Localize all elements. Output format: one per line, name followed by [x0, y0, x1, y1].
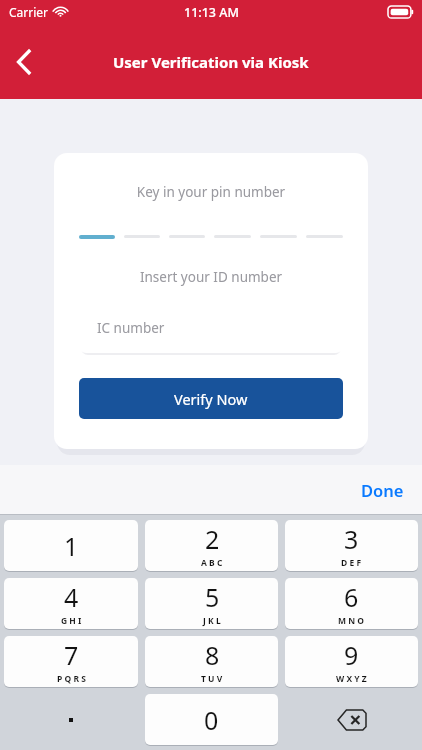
staticText: J K L [203, 615, 221, 627]
button[interactable]: 7 [4, 636, 138, 687]
staticText: A B C [201, 557, 223, 569]
button[interactable]: 2 [145, 520, 278, 571]
staticText: 11:13 AM [184, 4, 239, 21]
button[interactable]: 5 [145, 578, 278, 629]
button[interactable]: 0 [145, 694, 278, 745]
staticText: User Verification via Kiosk [113, 52, 309, 72]
button[interactable]: 4 [4, 578, 138, 629]
button[interactable]: Verify Now [79, 378, 343, 419]
staticText: 3 [344, 522, 359, 556]
staticText: G H I [61, 615, 82, 627]
staticText: 4 [64, 580, 79, 614]
staticText: 7 [64, 638, 79, 672]
button[interactable]: Back [0, 38, 48, 86]
staticText: Carrier [9, 4, 49, 20]
staticText: Done [361, 479, 404, 501]
button[interactable]: Decimal point [4, 694, 138, 745]
button[interactable]: 3 [285, 520, 418, 571]
staticText: T U V [201, 673, 223, 685]
staticText: D E F [341, 557, 362, 569]
staticText: M N O [338, 615, 365, 627]
staticText: 5 [205, 580, 220, 614]
staticText: 6 [344, 580, 359, 614]
button[interactable]: 9 [285, 636, 418, 687]
staticText: 1 [64, 529, 79, 563]
button[interactable]: 6 [285, 578, 418, 629]
button[interactable] [79, 235, 115, 239]
staticText: 9 [344, 638, 359, 672]
staticText: W X Y Z [336, 673, 367, 685]
staticText: Key in your pin number [79, 183, 343, 201]
staticText: 0 [204, 703, 219, 737]
button[interactable]: Done [343, 469, 422, 511]
button[interactable]: IC number [79, 303, 343, 353]
staticText: P Q R S [57, 673, 86, 685]
button[interactable]: 1 [4, 520, 138, 571]
staticText: Insert your ID number [79, 268, 343, 286]
staticText: Verify Now [174, 389, 248, 409]
button[interactable]: 8 [145, 636, 278, 687]
staticText: IC number [97, 319, 165, 337]
staticText: 8 [205, 638, 220, 672]
button[interactable]: Delete [285, 694, 418, 745]
staticText: 2 [205, 522, 220, 556]
